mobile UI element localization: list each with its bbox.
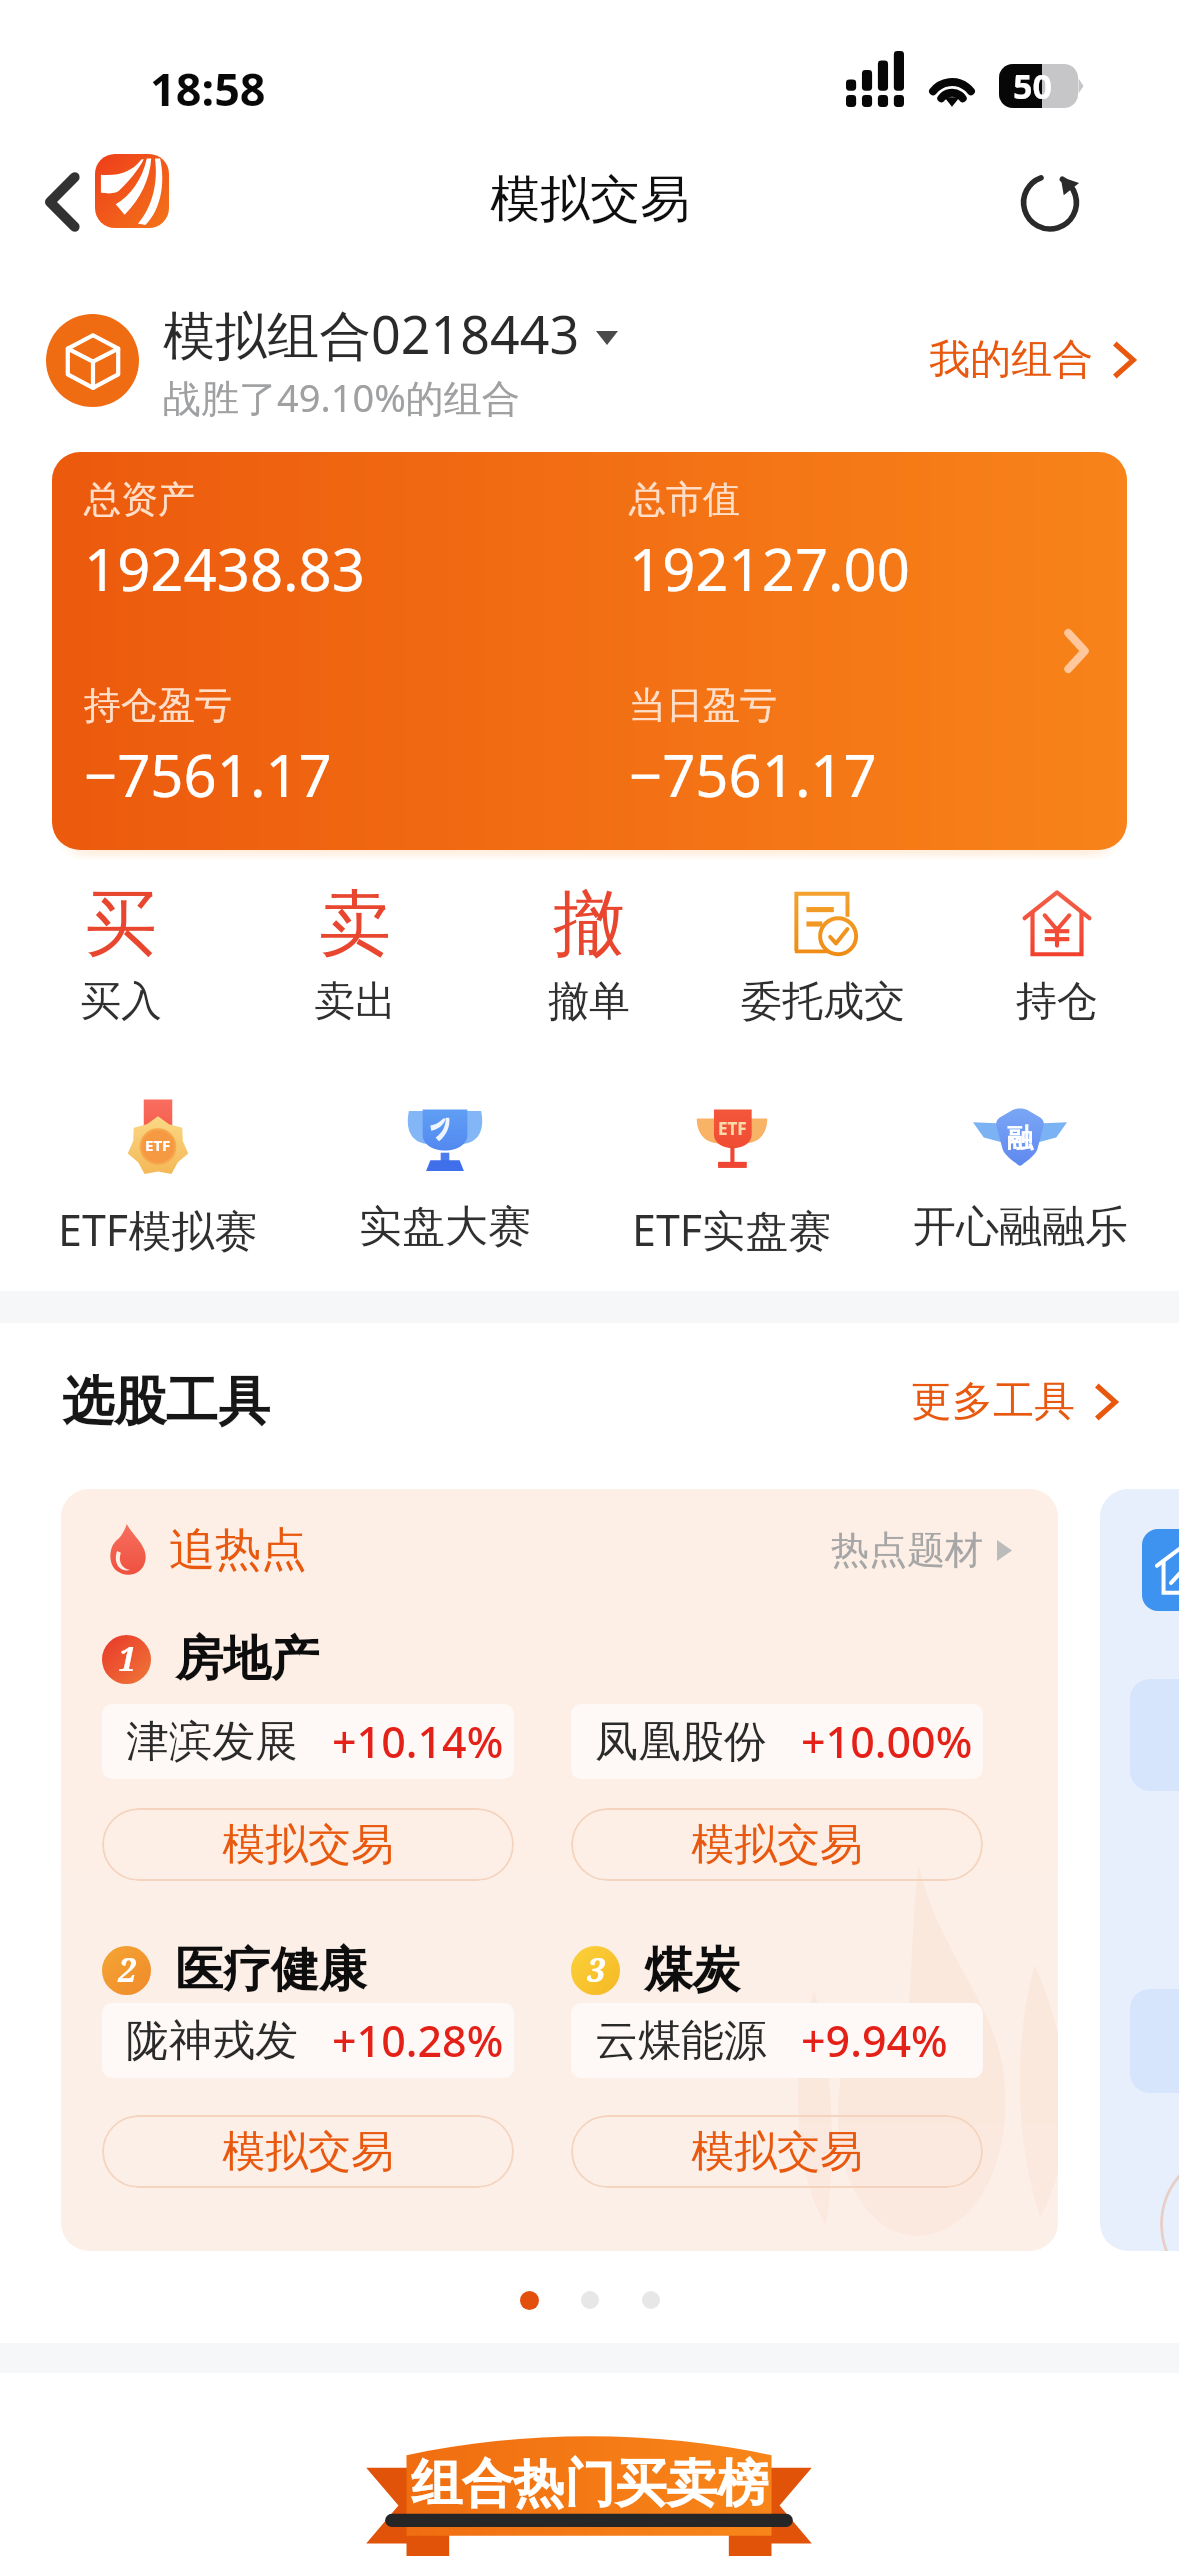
staticText: 1 xyxy=(118,1637,136,1681)
button[interactable]: 3 xyxy=(571,1940,740,2000)
staticText: −7561.17 xyxy=(84,735,332,814)
staticText: 撤单 xyxy=(548,976,630,1028)
staticText: +9.94% xyxy=(801,2011,948,2070)
button[interactable]: Back xyxy=(20,152,104,252)
button[interactable]: 1 xyxy=(102,1629,319,1689)
button[interactable]: 实盘大赛 xyxy=(301,1094,588,1254)
button[interactable]: 凤凰股份 xyxy=(571,1704,983,1779)
staticText: 模拟组合0218443 xyxy=(163,298,580,369)
staticText: 煤炭 xyxy=(644,1940,740,2000)
staticText: 融 xyxy=(1007,1122,1033,1155)
button[interactable]: ETF xyxy=(588,1094,876,1259)
button[interactable]: 热点题材 xyxy=(831,1526,1012,1574)
staticText: 实盘大赛 xyxy=(359,1200,531,1254)
button[interactable]: 总资产 xyxy=(52,452,1127,850)
button[interactable]: 津滨发展 xyxy=(102,1704,514,1779)
staticText: 18:58 xyxy=(150,58,266,119)
button[interactable]: 模拟交易 xyxy=(571,1808,983,1881)
staticText: 卖 xyxy=(319,879,391,970)
button[interactable]: 模拟交易 xyxy=(102,1808,514,1881)
staticText: ETF xyxy=(145,1135,171,1155)
staticText: +10.14% xyxy=(332,1712,504,1771)
staticText: −7561.17 xyxy=(629,735,877,814)
button[interactable]: 委托成交 xyxy=(706,878,940,1044)
staticText: 追热点 xyxy=(169,1521,307,1579)
button[interactable]: 撤 xyxy=(472,878,706,1044)
staticText: 委托成交 xyxy=(741,976,905,1028)
staticText: 持仓 xyxy=(1016,976,1098,1028)
button[interactable]: 融 xyxy=(876,1094,1164,1254)
staticText: 更多工具 xyxy=(911,1376,1075,1428)
staticText: 3 xyxy=(587,1948,605,1992)
staticText: 模拟交易 xyxy=(222,2125,394,2179)
staticText: 陇神戎发 xyxy=(126,2014,298,2068)
button[interactable]: 追热点 xyxy=(61,1489,1058,2251)
staticText: 战胜了49.10%的组合 xyxy=(163,371,520,423)
button[interactable]: 模拟组合0218443 xyxy=(46,290,618,430)
button[interactable]: 持仓 xyxy=(940,878,1174,1044)
button[interactable]: 买 xyxy=(4,878,238,1044)
button[interactable]: Page 2 xyxy=(572,2282,608,2318)
staticText: 模拟交易 xyxy=(222,1818,394,1872)
staticText: 买 xyxy=(85,879,157,970)
button[interactable]: Page 3 xyxy=(633,2282,669,2318)
staticText: 组合热门买卖榜 xyxy=(411,2452,768,2516)
staticText: 持仓盈亏 xyxy=(84,682,232,729)
staticText: 模拟交易 xyxy=(490,168,690,231)
staticText: 模拟交易 xyxy=(691,1818,863,1872)
staticText: 卖出 xyxy=(314,976,396,1028)
button[interactable]: Refresh xyxy=(995,146,1105,256)
staticText: 津滨发展 xyxy=(126,1715,298,1769)
staticText: 买入 xyxy=(80,976,162,1028)
staticText: 凤凰股份 xyxy=(595,1715,767,1769)
staticText: ETF模拟赛 xyxy=(58,1200,258,1259)
staticText: 模拟交易 xyxy=(691,2125,863,2179)
button[interactable]: ETF xyxy=(14,1094,301,1259)
button[interactable]: 卖 xyxy=(238,878,472,1044)
staticText: 开心融融乐 xyxy=(913,1200,1128,1254)
button[interactable]: App logo xyxy=(95,154,169,228)
staticText: ETF实盘赛 xyxy=(632,1200,832,1259)
staticText: +10.28% xyxy=(332,2011,504,2070)
staticText: 热点题材 xyxy=(831,1526,983,1574)
staticText: 当日盈亏 xyxy=(629,682,777,729)
staticText: 撤 xyxy=(553,879,625,970)
staticText: 192127.00 xyxy=(629,529,910,608)
staticText: 医疗健康 xyxy=(175,1940,367,2000)
button[interactable]: 组合热门买卖榜 xyxy=(352,2430,826,2556)
staticText: 2 xyxy=(118,1948,136,1992)
staticText: 总资产 xyxy=(84,476,195,523)
button[interactable]: 我的组合 xyxy=(921,322,1143,398)
staticText: 50 xyxy=(1013,63,1052,107)
button[interactable]: 云煤能源 xyxy=(571,2003,983,2078)
button[interactable]: 模拟交易 xyxy=(571,2115,983,2188)
button[interactable]: 更多工具 xyxy=(905,1364,1123,1440)
staticText: 我的组合 xyxy=(929,334,1093,386)
button[interactable]: Page 1 xyxy=(511,2282,547,2318)
staticText: 总市值 xyxy=(629,476,740,523)
staticText: +10.00% xyxy=(801,1712,973,1771)
staticText: 房地产 xyxy=(175,1629,319,1689)
staticText: 192438.83 xyxy=(84,529,365,608)
staticText: 云煤能源 xyxy=(595,2014,767,2068)
staticText: 选股工具 xyxy=(62,1369,270,1435)
button[interactable]: 陇神戎发 xyxy=(102,2003,514,2078)
staticText: ETF xyxy=(718,1117,747,1140)
button[interactable]: 2 xyxy=(102,1940,367,2000)
button[interactable]: 模拟交易 xyxy=(102,2115,514,2188)
